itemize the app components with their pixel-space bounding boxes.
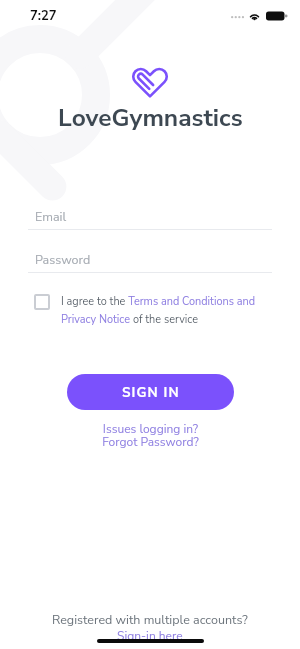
staticText: LoveGymnastics: [58, 101, 243, 134]
staticText: Password: [35, 251, 91, 268]
button[interactable]: I agree to the Terms and Conditions and …: [34, 294, 272, 327]
staticText: Email: [35, 208, 67, 225]
staticText: 7:27: [30, 7, 57, 25]
staticText: Issues logging in? Forgot Password?: [102, 421, 199, 450]
button[interactable]: Sign-in here: [117, 628, 183, 644]
staticText: Registered with multiple accounts?: [52, 611, 248, 628]
button[interactable]: SIGN IN: [67, 374, 234, 410]
staticText: I agree to the Terms and Conditions and …: [61, 294, 272, 327]
button[interactable]: Issues logging in? Forgot Password?: [0, 421, 300, 450]
staticText: Sign-in here: [117, 628, 183, 644]
staticText: SIGN IN: [122, 383, 180, 401]
